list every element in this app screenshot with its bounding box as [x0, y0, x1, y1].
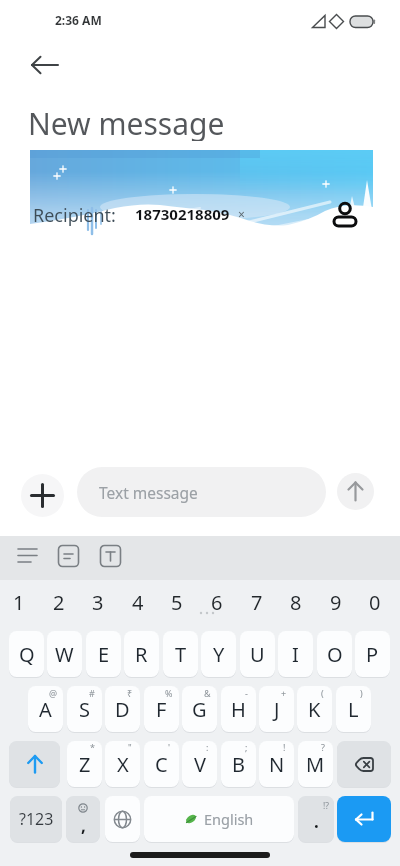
button[interactable]: 8 [282, 589, 310, 613]
staticText: % [165, 687, 173, 699]
staticText: A [39, 696, 52, 723]
button[interactable] [13, 544, 43, 572]
button[interactable]: N [259, 741, 294, 787]
staticText: English [204, 809, 254, 829]
button[interactable]: 0 [361, 589, 389, 613]
button[interactable]: 2 [45, 589, 73, 613]
staticText: U [250, 641, 265, 668]
button[interactable]: ?123 [10, 796, 62, 842]
button[interactable]: 1 [5, 589, 33, 613]
staticText: B [232, 751, 245, 778]
button[interactable]: . [298, 796, 334, 842]
staticText: ) [360, 687, 363, 699]
staticText: D [115, 696, 130, 723]
staticText: S [79, 696, 90, 723]
staticText: ! [283, 741, 286, 753]
button[interactable]: X [105, 741, 140, 787]
button[interactable] [105, 796, 140, 842]
button[interactable]: Text message [77, 467, 326, 517]
staticText: @ [49, 687, 58, 699]
staticText: M [306, 751, 325, 778]
staticText: 9 [330, 589, 342, 613]
button[interactable] [337, 796, 391, 842]
staticText: # [89, 687, 95, 699]
button[interactable]: E [86, 631, 121, 677]
staticText: New message [28, 103, 225, 141]
staticText: 7 [251, 589, 263, 613]
button[interactable]: 7 [243, 589, 271, 613]
button[interactable] [337, 473, 374, 510]
button[interactable]: Y [201, 631, 236, 677]
button[interactable]: T [163, 631, 198, 677]
staticText: !? [323, 800, 329, 811]
staticText: Z [79, 751, 91, 778]
button[interactable]: J [259, 686, 294, 732]
button[interactable]: 4 [124, 589, 152, 613]
staticText: T [175, 641, 187, 668]
button[interactable]: Recipient: [30, 150, 373, 237]
staticText: 8 [290, 589, 302, 613]
staticText: + [281, 687, 287, 699]
button[interactable]: G [182, 686, 217, 732]
button[interactable]: F [144, 686, 179, 732]
button[interactable]: Q [9, 631, 44, 677]
staticText: C [155, 751, 168, 778]
button[interactable]: H [221, 686, 256, 732]
staticText: X [117, 751, 129, 778]
staticText: 18730218809 [135, 204, 230, 224]
button[interactable] [97, 544, 125, 572]
staticText: O [327, 641, 343, 668]
staticText: W [55, 641, 74, 668]
button[interactable]: D [105, 686, 140, 732]
button[interactable]: 9 [322, 589, 350, 613]
staticText: G [192, 696, 207, 723]
button[interactable]: V [182, 741, 217, 787]
staticText: ?123 [19, 808, 54, 830]
staticText: ₹ [127, 687, 133, 699]
staticText: ( [321, 687, 324, 699]
staticText: E [98, 641, 110, 668]
button[interactable]: L [336, 686, 371, 732]
staticText: 5 [171, 589, 183, 613]
button[interactable]: C [144, 741, 179, 787]
button[interactable]: I [278, 631, 313, 677]
button[interactable]: English [144, 796, 294, 842]
staticText: - [245, 687, 248, 699]
button[interactable]: A [28, 686, 63, 732]
button[interactable]: P [355, 631, 390, 677]
staticText: * [90, 741, 95, 753]
button[interactable]: W [47, 631, 82, 677]
button[interactable] [9, 741, 60, 787]
button[interactable]: 3 [84, 589, 112, 613]
staticText: J [274, 696, 280, 723]
button[interactable]: K [297, 686, 332, 732]
button[interactable]: M [298, 741, 333, 787]
button[interactable] [21, 474, 64, 517]
staticText: Text message [99, 482, 198, 503]
button[interactable]: B [221, 741, 256, 787]
button[interactable]: S [67, 686, 102, 732]
button[interactable]: 5 [163, 589, 191, 613]
staticText: K [308, 696, 321, 723]
staticText: R [135, 641, 148, 668]
staticText: . [314, 810, 319, 833]
button[interactable] [22, 51, 66, 79]
button[interactable]: , [66, 796, 100, 842]
button[interactable]: R [124, 631, 159, 677]
staticText: Y [213, 641, 225, 668]
staticText: I [292, 641, 299, 668]
staticText: , [81, 814, 86, 837]
staticText: ' [168, 741, 171, 753]
staticText: V [194, 751, 206, 778]
button[interactable]: Z [67, 741, 102, 787]
button[interactable] [337, 741, 391, 787]
staticText: N [269, 751, 285, 778]
staticText: 2:36 AM [55, 12, 102, 28]
button[interactable]: 6 [203, 589, 231, 613]
staticText: 3 [92, 589, 104, 613]
button[interactable]: U [240, 631, 275, 677]
button[interactable]: 18730218809 [130, 204, 235, 224]
button[interactable]: O [317, 631, 352, 677]
button[interactable] [55, 544, 83, 572]
staticText: 2 [53, 589, 65, 613]
